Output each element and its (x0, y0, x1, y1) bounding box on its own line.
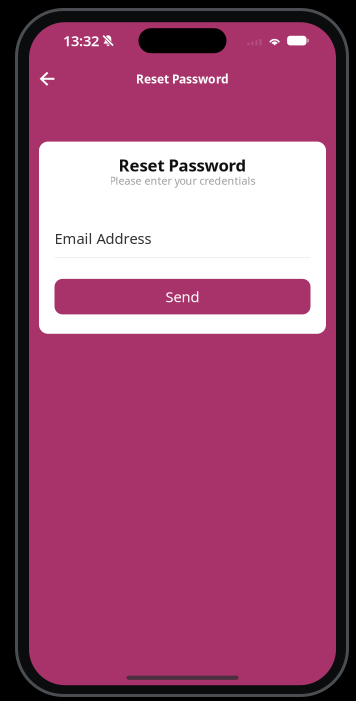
button[interactable]: Back (39, 67, 69, 91)
staticText: Send (165, 287, 199, 307)
staticText: Please enter your credentials (109, 173, 255, 188)
staticText: Reset Password (136, 71, 229, 87)
button[interactable]: Send (54, 279, 310, 314)
staticText: 13:32 (63, 31, 99, 51)
staticText: Reset Password (118, 154, 246, 176)
staticText: Email Address (54, 228, 151, 248)
